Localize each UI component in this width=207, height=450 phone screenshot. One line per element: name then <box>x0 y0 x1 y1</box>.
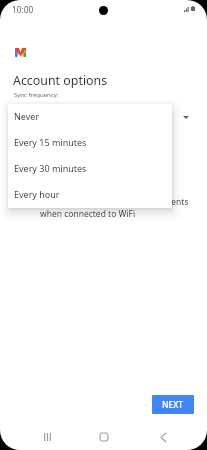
button[interactable]: Every 30 minutes <box>8 155 172 181</box>
button[interactable]: Recent apps <box>32 422 62 450</box>
button[interactable]: Open sync frequency dropdown <box>176 107 196 127</box>
staticText: Account options <box>13 72 108 89</box>
button[interactable]: Never <box>8 104 172 129</box>
button[interactable]: Notify me when email arrives <box>14 135 207 147</box>
staticText: NEXT <box>162 399 184 410</box>
button[interactable]: Sync email from this account <box>14 163 207 175</box>
button[interactable]: Automatically download attachments <box>14 196 207 220</box>
staticText: Every 15 minutes <box>14 136 87 148</box>
staticText: 10:00 <box>12 4 34 15</box>
button[interactable]: Every 15 minutes <box>8 129 172 155</box>
staticText: Sync frequency: <box>14 91 59 99</box>
staticText: Sync email from this account <box>40 163 155 175</box>
button[interactable]: NEXT <box>152 395 194 414</box>
staticText: Automatically download attachments <box>40 196 189 208</box>
staticText: Never <box>14 110 40 122</box>
button[interactable]: Home <box>89 422 119 450</box>
button[interactable]: Every hour <box>8 181 172 207</box>
staticText: Every hour <box>14 188 60 200</box>
staticText: when connected to WiFi <box>40 208 136 220</box>
button[interactable]: Back <box>148 422 178 450</box>
staticText: Notify me when email arrives <box>40 135 157 147</box>
staticText: Every 30 minutes <box>14 162 87 174</box>
staticText: Never <box>14 110 40 122</box>
